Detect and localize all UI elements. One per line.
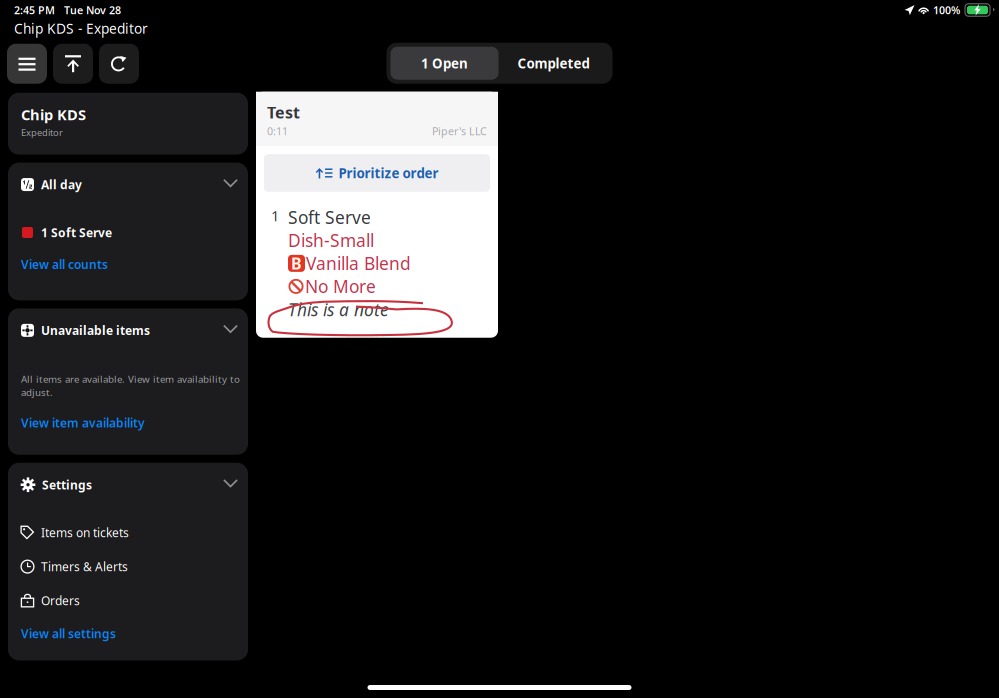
staticText: Dish-Small — [288, 229, 374, 252]
button[interactable]: Menu — [7, 44, 47, 84]
staticText: B — [291, 253, 302, 274]
button[interactable]: Completed — [498, 47, 608, 80]
staticText: View all settings — [21, 625, 116, 641]
staticText: Orders — [41, 593, 80, 608]
staticText: Items on tickets — [41, 525, 129, 541]
staticText: Soft Serve — [288, 206, 371, 229]
button[interactable]: Test — [256, 92, 498, 146]
staticText: Settings — [42, 477, 92, 493]
staticText: Tue Nov 28 — [55, 3, 121, 17]
staticText: 100% — [930, 3, 960, 17]
button[interactable]: Items on tickets — [8, 518, 248, 548]
staticText: Expeditor — [21, 126, 63, 139]
staticText: Unavailable items — [41, 322, 150, 338]
button[interactable]: Settings — [8, 463, 248, 499]
staticText: View item availability — [21, 415, 145, 431]
staticText: Prioritize order — [338, 164, 438, 182]
staticText: Chip KDS — [21, 105, 86, 124]
staticText: Vanilla Blend — [306, 252, 411, 275]
button[interactable]: View all settings — [8, 615, 248, 660]
staticText: Timers & Alerts — [41, 559, 128, 574]
staticText: All items are available. View item avail… — [21, 372, 240, 386]
staticText: Completed — [517, 54, 589, 72]
staticText: View all counts — [21, 256, 108, 272]
staticText: No More — [305, 275, 376, 298]
staticText: All day — [41, 177, 82, 192]
staticText: 0:11 — [267, 124, 288, 138]
button[interactable]: 1 — [256, 192, 498, 321]
button[interactable]: Unavailable items — [8, 308, 248, 344]
button[interactable]: View all counts — [8, 240, 248, 300]
button[interactable]: Prioritize order — [264, 154, 490, 192]
button[interactable]: All day — [8, 163, 248, 198]
staticText: 2:45 PM — [14, 3, 55, 17]
staticText: 1 Open — [421, 54, 468, 72]
button[interactable]: View item availability — [8, 399, 248, 455]
button[interactable]: Bump all orders — [53, 44, 93, 84]
button[interactable]: 1 Open — [390, 47, 498, 80]
staticText: 1 Soft Serve — [41, 224, 112, 240]
staticText: Test — [267, 102, 300, 123]
button[interactable]: Refresh — [99, 44, 139, 84]
staticText: Chip KDS - Expeditor — [14, 19, 148, 38]
button[interactable]: Orders — [8, 586, 248, 615]
staticText: 1 — [271, 206, 279, 225]
button[interactable]: Timers & Alerts — [8, 552, 248, 581]
staticText: Piper's LLC — [432, 124, 487, 138]
staticText: This is a note — [288, 298, 389, 321]
staticText: adjust. — [21, 386, 53, 399]
